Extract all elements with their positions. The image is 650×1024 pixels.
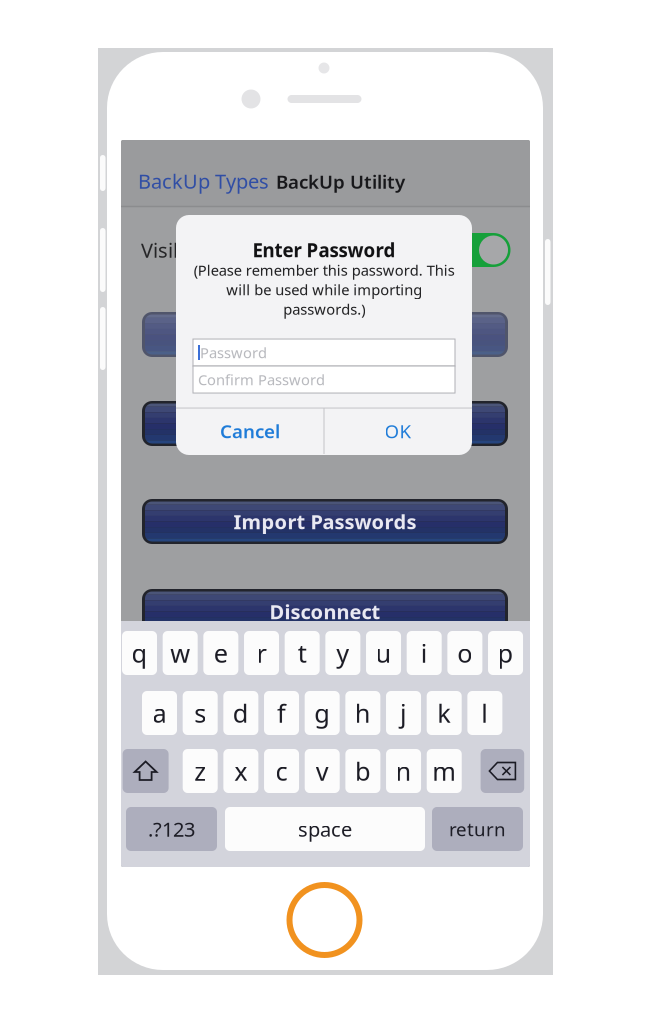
staticText: f [277,696,286,730]
staticText: Enter Password [252,238,395,262]
staticText: c [275,754,287,788]
button[interactable]: m [427,749,462,793]
button[interactable]: i [407,631,442,675]
button[interactable]: Numbers [126,807,217,851]
button[interactable]: x [223,749,258,793]
staticText: b [355,754,371,788]
button[interactable]: Disconnect [142,589,508,634]
staticText: r [256,636,266,670]
staticText: q [131,636,147,670]
button[interactable]: Space [225,807,425,851]
staticText: e [214,636,228,670]
staticText: n [396,754,412,788]
staticText: v [316,754,329,788]
button[interactable]: k [427,691,462,735]
staticText: u [375,636,391,670]
button[interactable]: h [345,691,380,735]
staticText: t [298,636,307,670]
staticText: l [481,696,488,730]
button[interactable]: Import Passwords [142,499,508,544]
button[interactable]: Delete [481,749,524,793]
staticText: s [194,696,206,730]
staticText: .?123 [148,816,195,842]
staticText: BackUp Utility [276,169,405,194]
staticText: Disconnect [269,598,380,625]
button[interactable]: BackUp Types [138,168,269,194]
button[interactable] [142,401,508,446]
button[interactable]: s [183,691,218,735]
button[interactable]: f [264,691,299,735]
button[interactable]: r [244,631,279,675]
staticText: o [457,636,472,670]
staticText: j [400,696,407,730]
staticText: z [194,754,206,788]
staticText: Cancel [220,419,280,443]
staticText: y [336,636,349,670]
staticText: Password [200,343,267,362]
button[interactable]: d [223,691,258,735]
button[interactable] [142,312,508,357]
staticText: h [355,696,371,730]
staticText: Visible [141,237,201,263]
button[interactable]: t [285,631,320,675]
button[interactable]: OK [324,408,472,454]
staticText: w [170,636,190,670]
button[interactable]: u [366,631,401,675]
button[interactable]: p [488,631,523,675]
button[interactable]: w [163,631,198,675]
button[interactable]: Home [289,885,359,955]
button[interactable]: n [386,749,421,793]
staticText: Import Passwords [233,508,416,535]
staticText: x [234,754,247,788]
button[interactable]: l [467,691,502,735]
button[interactable]: q [122,631,157,675]
staticText: k [437,696,451,730]
button[interactable]: c [264,749,299,793]
staticText: a [152,696,166,730]
button[interactable]: o [447,631,482,675]
staticText: i [421,636,428,670]
button[interactable]: y [325,631,360,675]
button[interactable]: a [142,691,177,735]
staticText: BackUp Types [138,168,269,194]
staticText: p [497,636,513,670]
staticText: space [298,816,352,842]
staticText: m [432,754,456,788]
staticText: OK [384,419,411,443]
button[interactable]: e [203,631,238,675]
staticText: g [314,696,330,730]
button[interactable]: Shift [123,749,169,793]
button[interactable]: Cancel [176,408,324,454]
staticText: (Please remember this password. This wil… [193,260,454,319]
button[interactable]: j [386,691,421,735]
button[interactable]: Return [432,807,523,851]
button[interactable]: g [305,691,340,735]
button[interactable]: b [345,749,380,793]
button[interactable]: z [183,749,218,793]
staticText: Confirm Password [198,370,325,389]
button[interactable]: Visible [455,233,510,267]
staticText: return [449,817,506,841]
button[interactable]: v [305,749,340,793]
staticText: d [233,696,249,730]
